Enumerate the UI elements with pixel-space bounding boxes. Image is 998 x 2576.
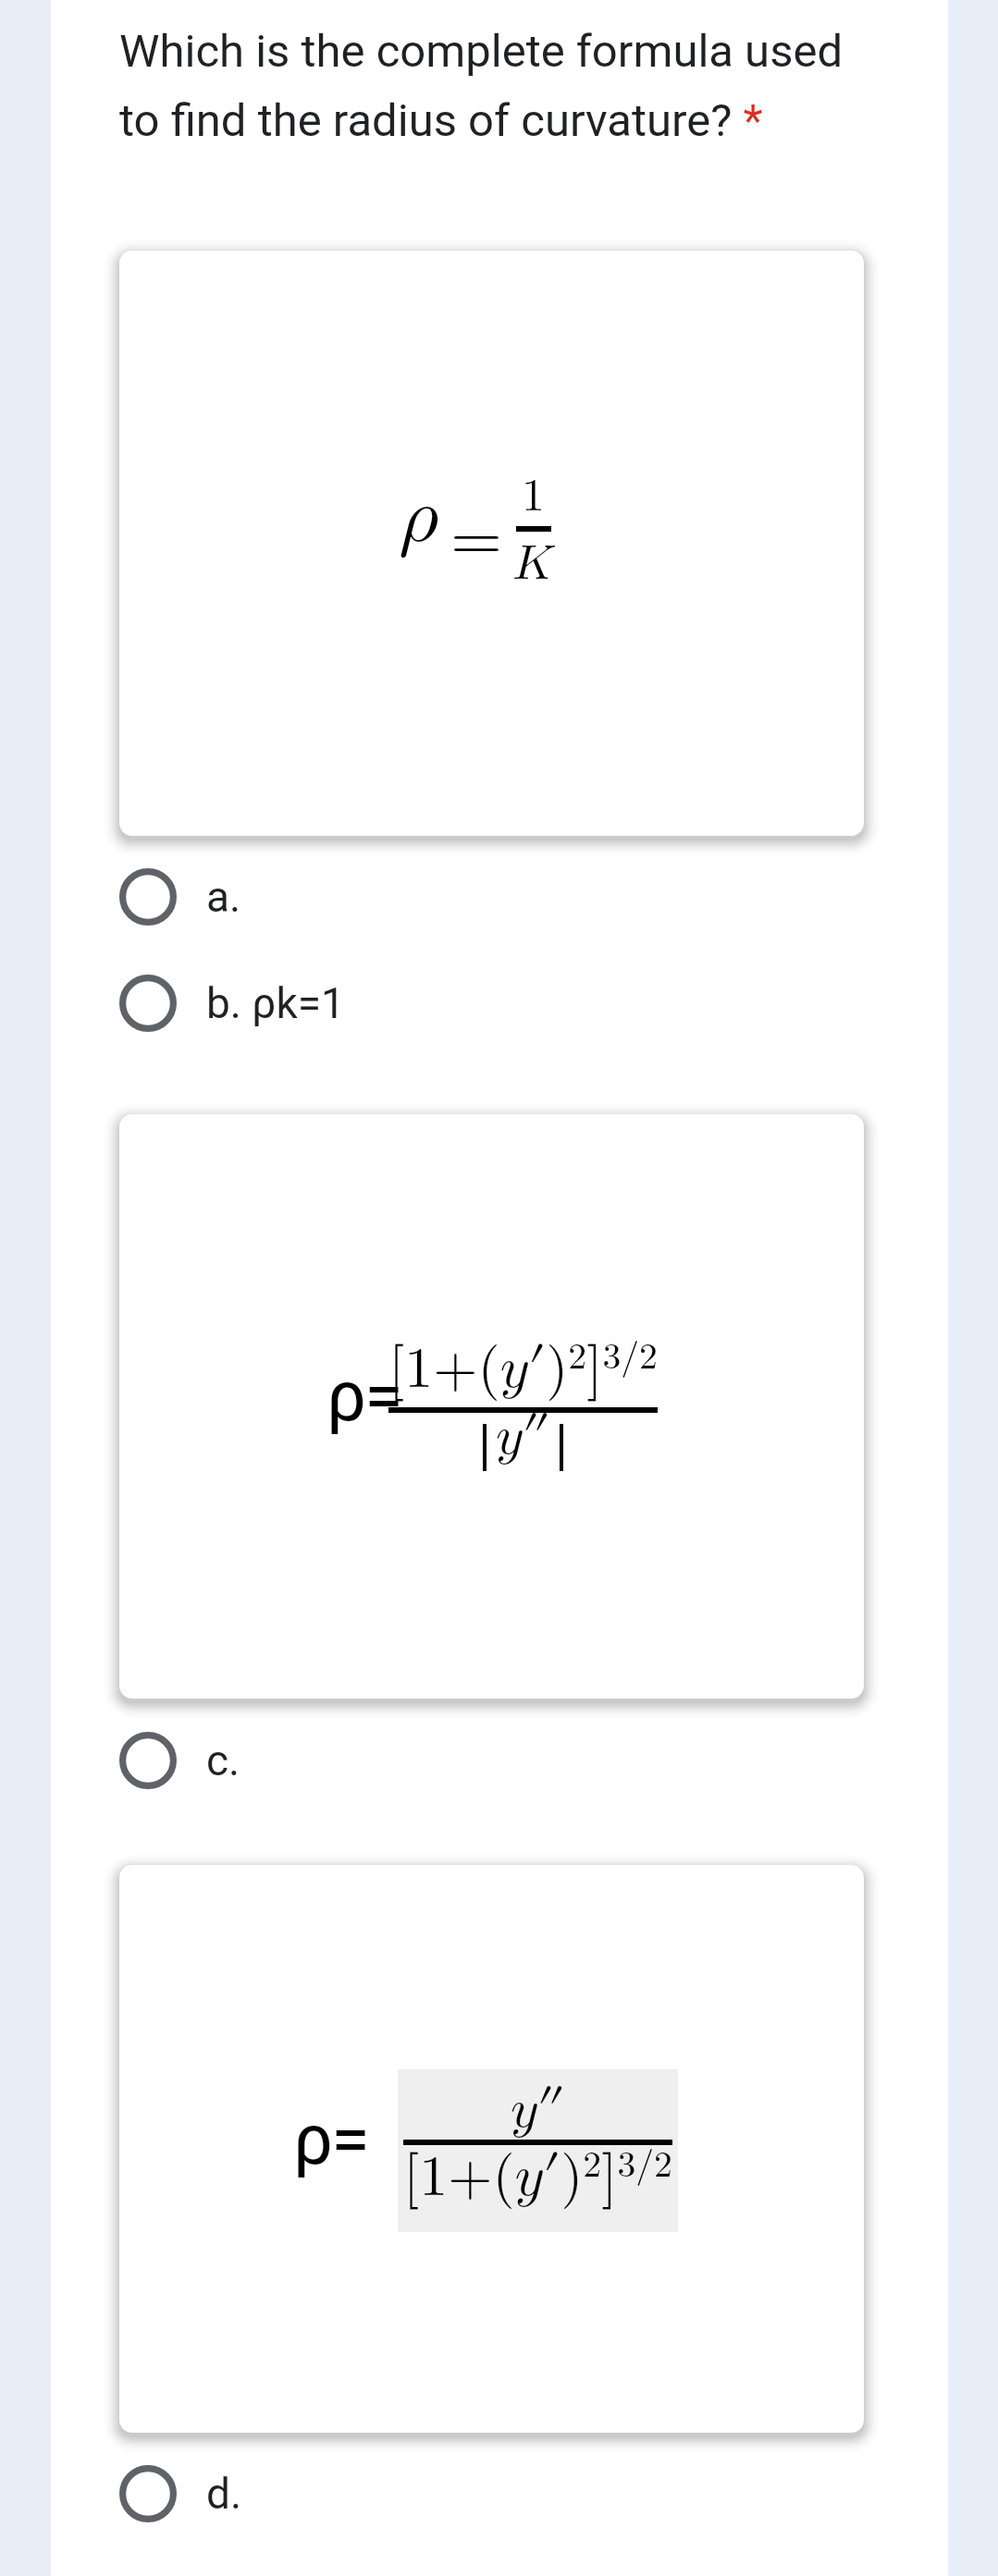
staticText: 𝜌 (399, 478, 439, 556)
staticText: = (450, 485, 503, 580)
button[interactable]: a. (51, 849, 948, 945)
staticText: Which is the complete formula used to fi… (119, 25, 850, 147)
staticText: 𝑦″ (496, 1410, 550, 1465)
button[interactable]: d. (51, 2446, 948, 2542)
staticText: ρ= (327, 1355, 401, 1437)
staticText: [1+(𝑦′)2]3/2 (403, 2130, 672, 2212)
staticText: [1+(𝑦′)2]3/2 (388, 1322, 658, 1404)
staticText: d. (206, 2469, 242, 2519)
staticText: 1 (522, 459, 545, 524)
staticText: a. (206, 872, 241, 922)
button[interactable]: b. ρk=1 (51, 955, 948, 1051)
staticText: b. ρk=1 (206, 978, 345, 1028)
staticText: c. (206, 1736, 240, 1785)
button[interactable]: c. (51, 1712, 948, 1809)
staticText: ρ= (293, 2098, 368, 2180)
staticText: 𝑦″ (511, 2083, 565, 2138)
staticText: 𝐾 (512, 540, 554, 588)
